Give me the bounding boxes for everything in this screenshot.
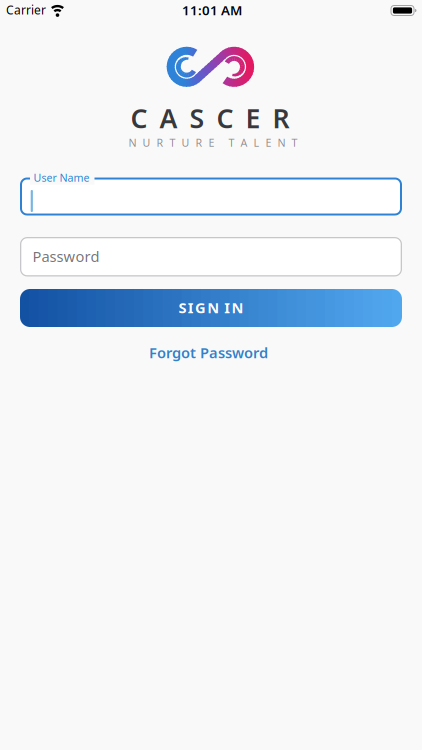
staticText: L bbox=[253, 135, 259, 150]
staticText: U bbox=[142, 135, 150, 150]
button[interactable]: S bbox=[20, 289, 402, 327]
button[interactable]: Forgot Password bbox=[149, 343, 268, 362]
staticText: T bbox=[291, 135, 297, 150]
staticText: S bbox=[178, 298, 186, 317]
staticText: Forgot Password bbox=[149, 343, 268, 362]
staticText: I bbox=[224, 298, 230, 317]
staticText: User Name bbox=[33, 170, 89, 185]
staticText: A bbox=[240, 135, 247, 150]
staticText: 11:01 AM bbox=[182, 1, 242, 19]
staticText: N bbox=[277, 135, 285, 150]
staticText: N bbox=[207, 298, 219, 317]
button[interactable]: Password bbox=[20, 237, 402, 276]
staticText: E bbox=[265, 135, 271, 150]
staticText: T bbox=[228, 135, 234, 150]
staticText: N bbox=[232, 298, 244, 317]
staticText: I bbox=[188, 298, 194, 317]
staticText: T bbox=[169, 135, 175, 150]
staticText: Carrier bbox=[6, 2, 46, 18]
staticText: G bbox=[195, 298, 206, 317]
staticText: CASCER bbox=[130, 100, 289, 136]
staticText: Password bbox=[33, 246, 100, 266]
staticText: U bbox=[181, 135, 189, 150]
staticText: R bbox=[195, 135, 202, 150]
staticText: R bbox=[156, 135, 163, 150]
staticText: N bbox=[128, 135, 136, 150]
staticText: E bbox=[208, 135, 214, 150]
button[interactable]: User Name bbox=[20, 177, 402, 215]
